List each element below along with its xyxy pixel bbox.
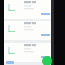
button[interactable]: View details [4, 0, 51, 19]
button[interactable]: View details [4, 43, 51, 62]
button[interactable]: View details [41, 56, 50, 58]
button[interactable]: Add [42, 56, 52, 65]
button[interactable]: View details [4, 21, 51, 40]
button[interactable]: Home [6, 61, 14, 64]
